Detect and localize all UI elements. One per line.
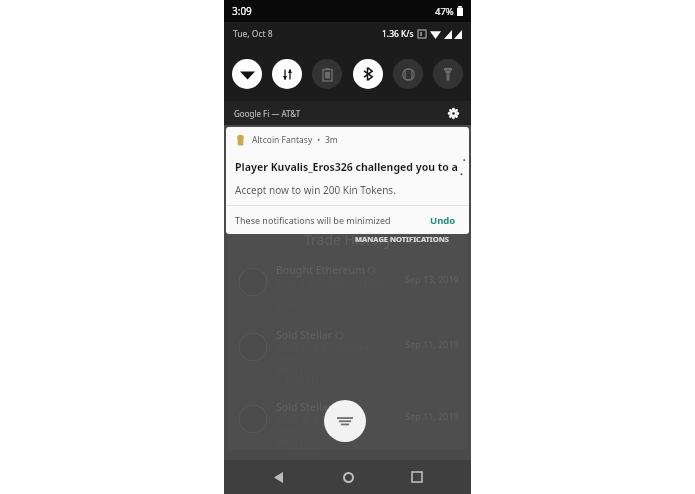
staticText: Sep 11, 2019 (405, 338, 459, 350)
button[interactable]: Bluetooth (353, 59, 383, 89)
staticText: Trade History (304, 230, 392, 249)
button[interactable]: Filter trades (324, 400, 366, 442)
staticText: 3m (325, 134, 338, 146)
staticText: Undo (430, 214, 456, 227)
staticText: 61376.80 @ $0.06054 with a trade fee of … (276, 414, 401, 447)
button[interactable]: Settings (445, 105, 461, 121)
button[interactable]: MANAGE NOTIFICATIONS (355, 234, 449, 244)
button[interactable]: Flashlight (433, 59, 463, 89)
button[interactable]: Mobile data (272, 59, 302, 89)
staticText: MANAGE NOTIFICATIONS (355, 234, 449, 244)
button[interactable]: Back (262, 461, 294, 493)
staticText: Player Kuvalis_Eros326 challenged you to… (235, 160, 460, 174)
button[interactable]: Undo (426, 211, 460, 230)
button[interactable]: Auto rotate (393, 59, 423, 89)
staticText: Bought Ethereum (276, 263, 365, 277)
button[interactable]: Battery saver (312, 59, 342, 89)
staticText: These notifications will be minimized (235, 214, 391, 226)
staticText: Google Fi — AT&T (234, 108, 301, 119)
staticText: Altcoin Fantasy (252, 134, 313, 146)
button[interactable]: Sold Stellar (238, 400, 459, 450)
button[interactable]: Wi-Fi (232, 59, 262, 89)
staticText: Sold Stellar (276, 328, 333, 342)
staticText: Accept now to win 200 Kin Tokens. (235, 183, 396, 197)
staticText: Tue, Oct 8 (233, 28, 273, 40)
staticText: Sold Stellar (276, 400, 333, 414)
staticText: 47% (435, 5, 454, 18)
staticText: Sep 13, 2019 (405, 273, 459, 285)
staticText: 3:09 (232, 4, 252, 18)
staticText: • (317, 134, 321, 146)
button[interactable]: Home (332, 461, 364, 493)
button[interactable]: Altcoin Fantasy (226, 127, 469, 205)
staticText: Sep 11, 2019 (405, 410, 459, 422)
button[interactable]: Recent apps (401, 461, 433, 493)
staticText: 1.36 K/s (382, 28, 414, 40)
